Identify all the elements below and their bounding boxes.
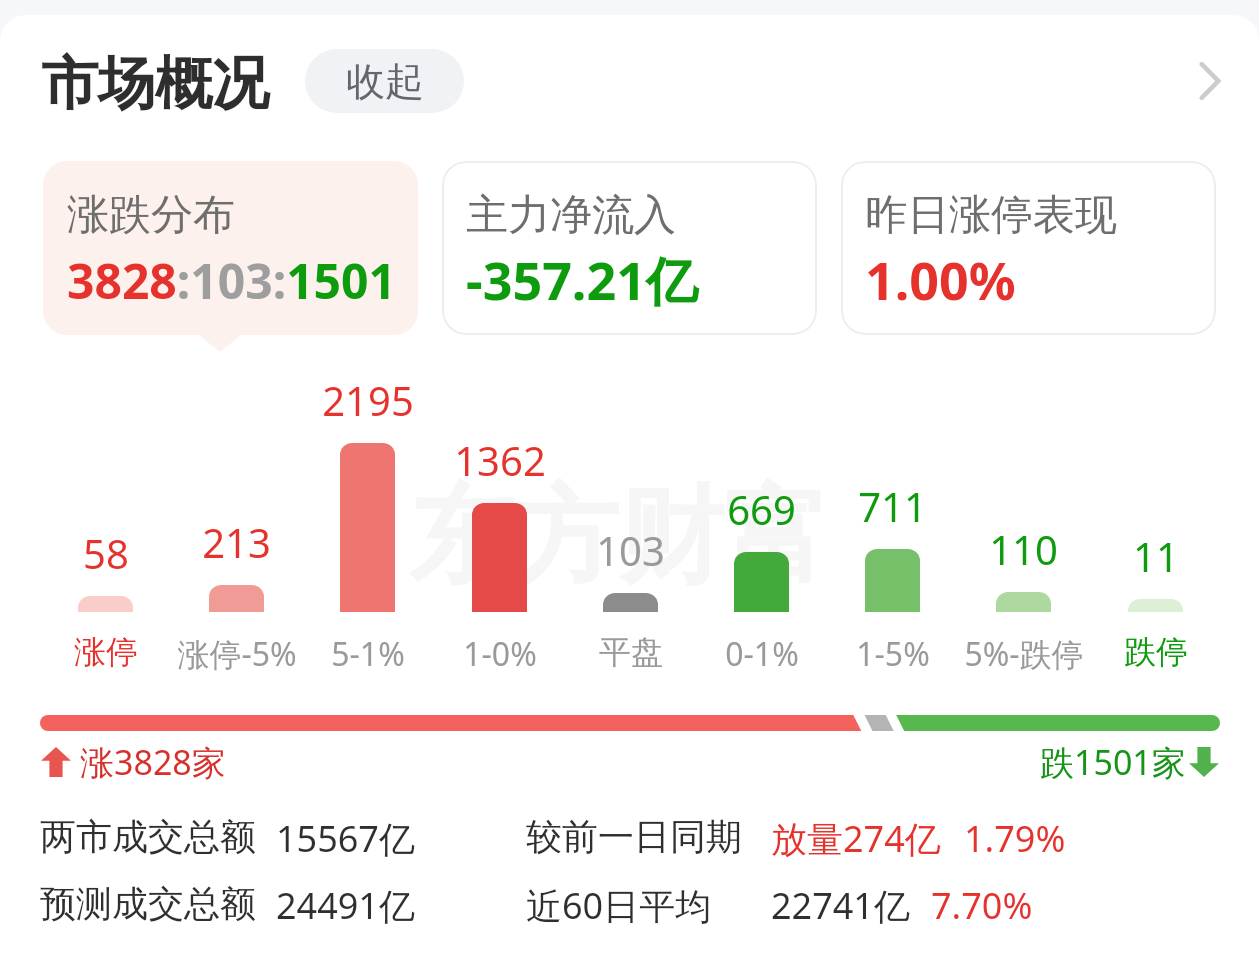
staticText: 较前一日同期 [526, 814, 742, 859]
staticText: 103 [596, 523, 665, 573]
staticText: 2195 [322, 373, 414, 423]
staticText: 11 [1133, 529, 1179, 579]
staticText: 主力净流入 [466, 189, 676, 242]
staticText: 0-1% [725, 632, 799, 676]
staticText: 近60日平均 [526, 881, 712, 930]
button[interactable]: 涨跌分布 [43, 161, 418, 335]
staticText: 711 [858, 479, 927, 529]
button[interactable]: 主力净流入 [442, 161, 817, 335]
button[interactable] [302, 375, 433, 672]
button[interactable] [565, 375, 696, 672]
staticText: 两市成交总额 [40, 814, 256, 859]
staticText: 5%-跌停 [964, 632, 1084, 676]
button[interactable] [958, 375, 1089, 672]
staticText: 1-5% [856, 632, 930, 676]
staticText: 7.70% [931, 881, 1033, 930]
staticText: 1.00% [865, 244, 1016, 315]
staticText: 涨停 [74, 632, 138, 672]
staticText: 涨跌分布 [67, 189, 235, 242]
staticText: 58 [83, 526, 129, 576]
staticText: 15567亿 [276, 814, 415, 863]
staticText: 3828:103:1501 [67, 248, 396, 313]
staticText: 昨日涨停表现 [865, 189, 1117, 242]
button[interactable] [40, 375, 171, 672]
button[interactable] [827, 375, 958, 672]
button[interactable] [434, 375, 565, 672]
staticText: -357.21亿 [466, 244, 698, 315]
staticText: 跌1501家 [1040, 739, 1186, 785]
staticText: 110 [989, 522, 1058, 572]
staticText: 市场概况 [41, 48, 269, 120]
staticText: 涨3828家 [80, 739, 226, 785]
button[interactable] [171, 375, 302, 672]
staticText: 平盘 [599, 632, 663, 672]
button[interactable]: 收起 [305, 49, 464, 113]
staticText: 213 [202, 515, 271, 565]
staticText: 涨停-5% [177, 632, 297, 676]
staticText: 1362 [454, 433, 546, 483]
staticText: 收起 [346, 57, 424, 106]
staticText: 1.79% [964, 814, 1066, 863]
staticText: 5-1% [331, 632, 405, 676]
staticText: 669 [727, 482, 796, 532]
button[interactable] [696, 375, 827, 672]
staticText: 24491亿 [276, 881, 415, 930]
staticText: 跌停 [1124, 632, 1188, 672]
staticText: 东方财富 [409, 471, 829, 603]
staticText: 22741亿 [771, 881, 910, 930]
staticText: 放量274亿 [771, 814, 941, 863]
button[interactable]: More [1172, 43, 1248, 119]
button[interactable]: 昨日涨停表现 [841, 161, 1216, 335]
staticText: 1-0% [463, 632, 537, 676]
staticText: 预测成交总额 [40, 881, 256, 926]
button[interactable] [1090, 375, 1221, 672]
